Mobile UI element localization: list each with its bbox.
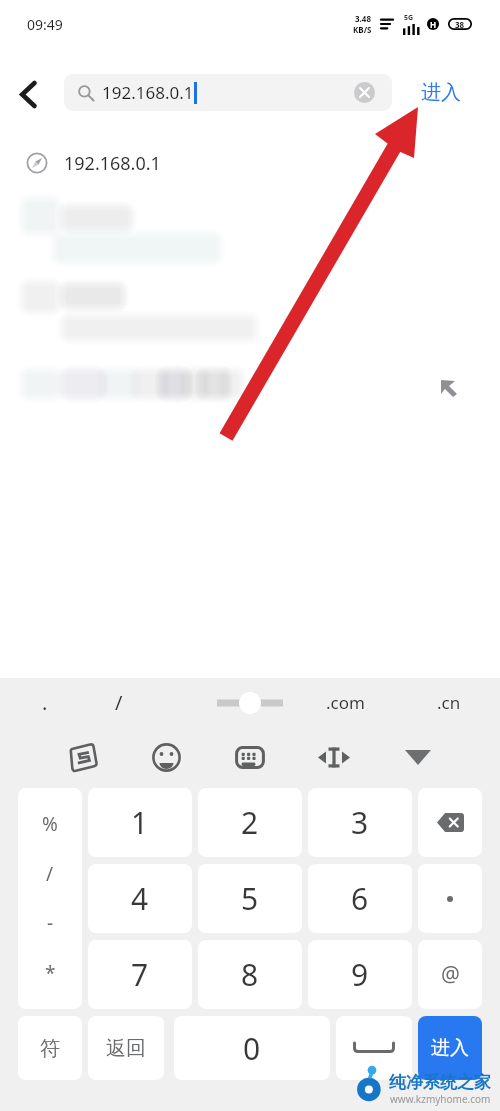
button[interactable]: Hide keyboard bbox=[376, 727, 460, 787]
staticText: H bbox=[430, 19, 437, 30]
button[interactable]: 192.168.0.1 bbox=[64, 74, 392, 111]
button[interactable]: 符 bbox=[18, 1016, 82, 1080]
staticText: / bbox=[115, 689, 123, 716]
staticText: 1 bbox=[131, 802, 149, 843]
staticText: / bbox=[46, 861, 54, 887]
button[interactable]: . bbox=[10, 678, 80, 727]
button[interactable]: 进入 bbox=[414, 75, 468, 110]
button[interactable]: 2 bbox=[198, 788, 302, 857]
staticText: - bbox=[47, 910, 54, 936]
staticText: 7 bbox=[131, 954, 149, 995]
staticText: . bbox=[42, 689, 48, 716]
staticText: 返回 bbox=[106, 1036, 146, 1061]
button[interactable]: Keyboard layout bbox=[208, 727, 292, 787]
button[interactable]: 8 bbox=[198, 940, 302, 1009]
button[interactable]: 返回 bbox=[88, 1016, 164, 1080]
staticText: 9 bbox=[351, 954, 369, 995]
staticText: 38 bbox=[455, 19, 465, 30]
staticText: www.kzmyhome.com bbox=[390, 1092, 491, 1106]
button[interactable]: 7 bbox=[88, 940, 192, 1009]
button[interactable]: / bbox=[84, 678, 154, 727]
staticText: 进入 bbox=[421, 80, 461, 105]
staticText: .cn bbox=[437, 691, 461, 714]
staticText: 192.168.0.1 bbox=[64, 151, 161, 176]
button[interactable]: 0 bbox=[174, 1016, 330, 1080]
staticText: 09:49 bbox=[27, 15, 63, 34]
staticText: * bbox=[45, 960, 56, 986]
staticText: 进入 bbox=[431, 1036, 469, 1060]
staticText: 5 bbox=[241, 878, 259, 919]
button[interactable]: Backspace bbox=[418, 788, 482, 857]
button[interactable]: .com bbox=[310, 678, 380, 727]
button[interactable]: Move cursor bbox=[292, 727, 376, 787]
button[interactable]: Back bbox=[6, 72, 50, 116]
button[interactable]: Space bbox=[336, 1016, 412, 1080]
button[interactable]: Cursor slider bbox=[200, 678, 300, 727]
button[interactable]: 1 bbox=[88, 788, 192, 857]
button[interactable]: 3 bbox=[308, 788, 412, 857]
staticText: 3.48 bbox=[355, 13, 371, 24]
button[interactable]: 进入 bbox=[418, 1016, 482, 1080]
button[interactable]: Sogou input bbox=[40, 727, 124, 787]
button[interactable]: 192.168.0.1 bbox=[0, 139, 500, 187]
button[interactable]: Emoji bbox=[124, 727, 208, 787]
button[interactable]: Clear text bbox=[354, 82, 375, 103]
button[interactable]: Period bbox=[418, 864, 482, 933]
staticText: 192.168.0.1 bbox=[102, 81, 194, 104]
button[interactable]: 6 bbox=[308, 864, 412, 933]
staticText: 纯净系统之家 bbox=[389, 1072, 491, 1093]
staticText: 6 bbox=[351, 878, 369, 919]
staticText: 3 bbox=[351, 802, 369, 843]
staticText: 符 bbox=[40, 1036, 60, 1061]
staticText: 0 bbox=[243, 1028, 261, 1069]
button[interactable]: .cn bbox=[414, 678, 484, 727]
button[interactable]: 4 bbox=[88, 864, 192, 933]
staticText: 4 bbox=[131, 878, 149, 919]
button[interactable]: 5 bbox=[198, 864, 302, 933]
button[interactable]: % bbox=[18, 788, 82, 1009]
staticText: % bbox=[42, 811, 58, 837]
staticText: .com bbox=[326, 691, 365, 714]
staticText: 5G bbox=[404, 13, 414, 23]
staticText: KB/S bbox=[353, 24, 372, 35]
staticText: 2 bbox=[241, 802, 259, 843]
button[interactable]: 9 bbox=[308, 940, 412, 1009]
button[interactable]: At sign bbox=[418, 940, 482, 1009]
staticText: @ bbox=[441, 960, 460, 989]
staticText: 8 bbox=[241, 954, 259, 995]
